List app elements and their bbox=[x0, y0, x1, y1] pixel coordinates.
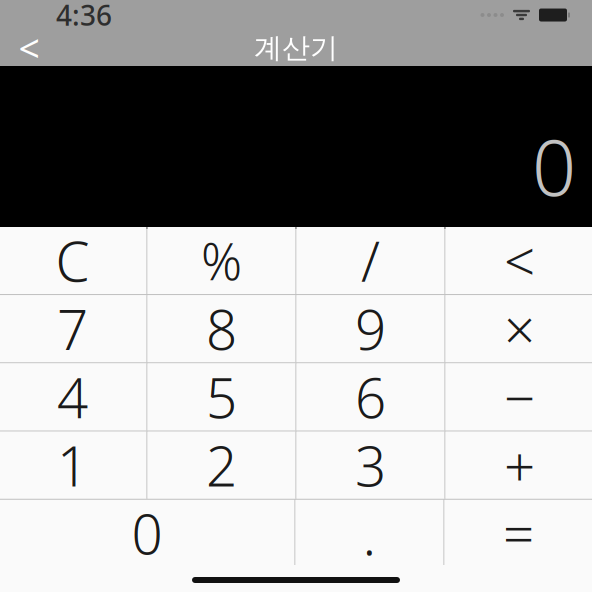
button[interactable]: = bbox=[444, 500, 592, 567]
staticText: 4:36 bbox=[56, 0, 112, 34]
staticText: 4 bbox=[57, 361, 88, 433]
button[interactable]: 3 bbox=[296, 432, 444, 499]
staticText: C bbox=[55, 224, 89, 297]
staticText: 0 bbox=[532, 114, 576, 217]
staticText: = bbox=[503, 497, 534, 570]
button[interactable]: 4 bbox=[0, 363, 146, 431]
staticText: 6 bbox=[355, 361, 386, 433]
staticText: 9 bbox=[355, 292, 386, 365]
staticText: 7 bbox=[57, 292, 88, 365]
staticText: / bbox=[361, 224, 380, 297]
button[interactable]: − bbox=[445, 363, 592, 431]
staticText: 0 bbox=[131, 497, 162, 570]
button[interactable]: 2 bbox=[147, 432, 295, 499]
staticText: − bbox=[504, 361, 535, 433]
button[interactable]: 8 bbox=[147, 295, 295, 362]
button[interactable]: 1 bbox=[0, 432, 146, 499]
staticText: 1 bbox=[57, 429, 88, 501]
staticText: < bbox=[504, 224, 535, 297]
button[interactable]: 0 bbox=[0, 500, 294, 567]
staticText: 5 bbox=[206, 361, 237, 433]
button[interactable]: 7 bbox=[0, 295, 146, 362]
button[interactable]: % bbox=[147, 227, 295, 294]
staticText: % bbox=[201, 227, 242, 294]
button[interactable]: C bbox=[0, 227, 146, 294]
button[interactable]: . bbox=[295, 500, 443, 567]
staticText: < bbox=[18, 23, 39, 73]
button[interactable]: × bbox=[445, 295, 592, 362]
button[interactable]: Back bbox=[0, 30, 58, 66]
button[interactable]: 6 bbox=[296, 363, 444, 431]
staticText: 3 bbox=[355, 429, 386, 501]
button[interactable]: 9 bbox=[296, 295, 444, 362]
button[interactable]: 5 bbox=[147, 363, 295, 431]
staticText: 8 bbox=[206, 292, 237, 365]
staticText: . bbox=[362, 496, 376, 571]
staticText: 계산기 bbox=[254, 31, 338, 65]
staticText: 2 bbox=[206, 429, 237, 501]
staticText: × bbox=[504, 292, 535, 365]
button[interactable]: + bbox=[445, 432, 592, 499]
button[interactable]: / bbox=[296, 227, 444, 294]
staticText: + bbox=[504, 429, 535, 501]
button[interactable]: < bbox=[445, 227, 592, 294]
